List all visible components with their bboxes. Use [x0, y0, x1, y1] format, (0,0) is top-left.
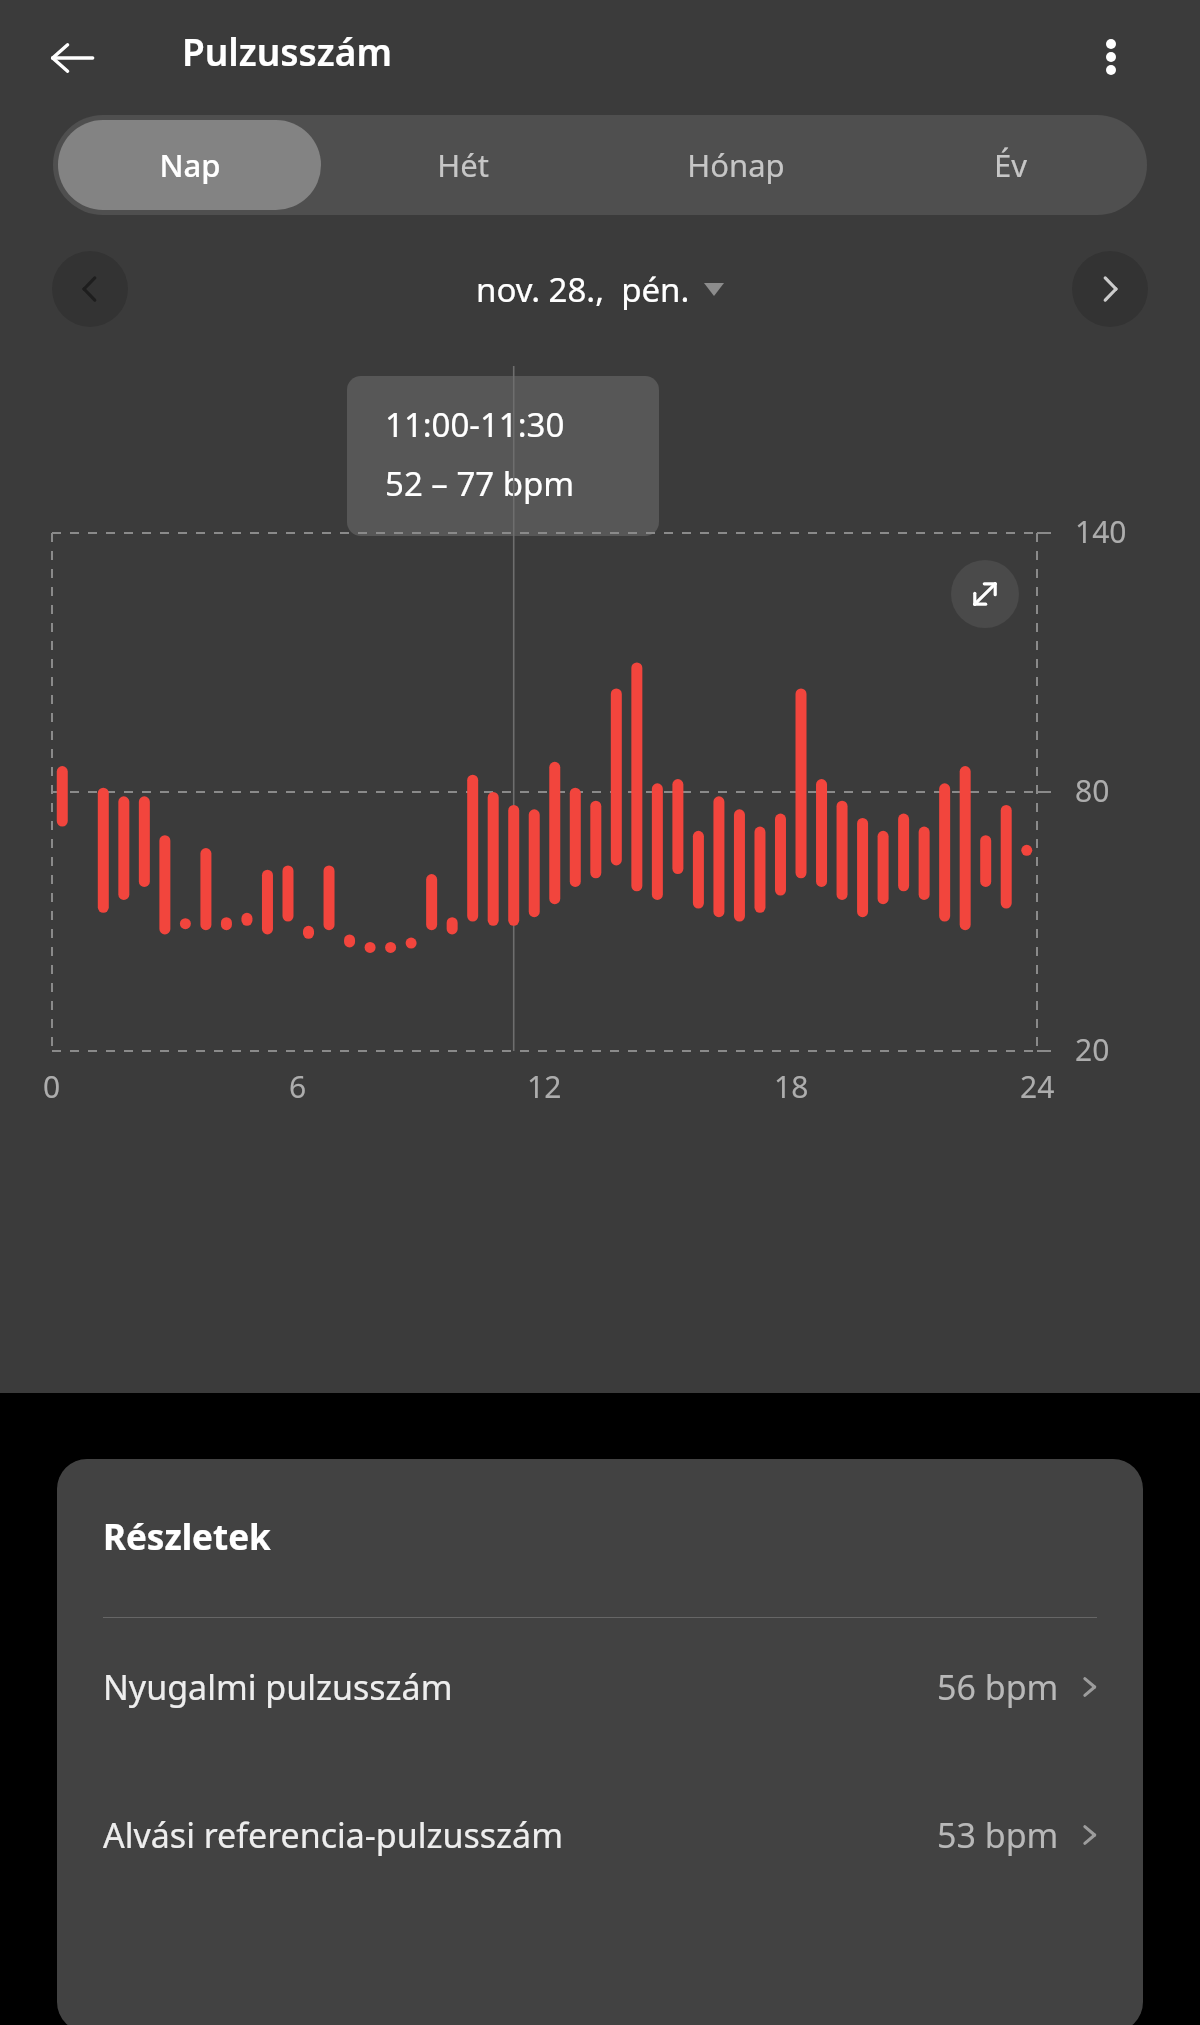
- button[interactable]: Nyugalmi pulzusszám: [57, 1618, 1143, 1756]
- button[interactable]: Previous day: [52, 251, 128, 327]
- staticText: 20: [1075, 1029, 1110, 1070]
- button[interactable]: nov. 28., pén.: [476, 267, 724, 312]
- staticText: Év: [994, 144, 1027, 186]
- staticText: Alvási referencia-pulzusszám: [103, 1812, 563, 1858]
- staticText: Részletek: [103, 1513, 271, 1561]
- staticText: nov. 28., pén.: [476, 267, 690, 312]
- staticText: 11:00-11:30: [385, 402, 565, 447]
- button[interactable]: Back: [34, 20, 110, 96]
- staticText: 140: [1075, 511, 1127, 552]
- staticText: 53 bpm: [937, 1812, 1059, 1858]
- staticText: 0: [43, 1066, 61, 1107]
- staticText: Pulzusszám: [182, 26, 392, 76]
- staticText: 24: [1020, 1066, 1055, 1107]
- staticText: 6: [289, 1066, 307, 1107]
- staticText: 80: [1075, 770, 1110, 811]
- button[interactable]: Next day: [1072, 251, 1148, 327]
- staticText: Nap: [159, 144, 221, 186]
- button[interactable]: Hónap: [604, 120, 868, 210]
- button[interactable]: Nap: [58, 120, 321, 210]
- button[interactable]: Alvási referencia-pulzusszám: [57, 1756, 1143, 1914]
- button[interactable]: Expand chart: [951, 560, 1019, 628]
- staticText: Hónap: [687, 144, 785, 186]
- staticText: 52 – 77 bpm: [385, 461, 575, 506]
- staticText: 12: [527, 1066, 562, 1107]
- staticText: 56 bpm: [937, 1664, 1059, 1710]
- button[interactable]: Hét: [331, 120, 594, 210]
- button[interactable]: More options: [1072, 18, 1150, 96]
- staticText: Nyugalmi pulzusszám: [103, 1664, 453, 1710]
- button[interactable]: Év: [878, 120, 1142, 210]
- staticText: 18: [774, 1066, 809, 1107]
- staticText: Hét: [437, 144, 489, 186]
